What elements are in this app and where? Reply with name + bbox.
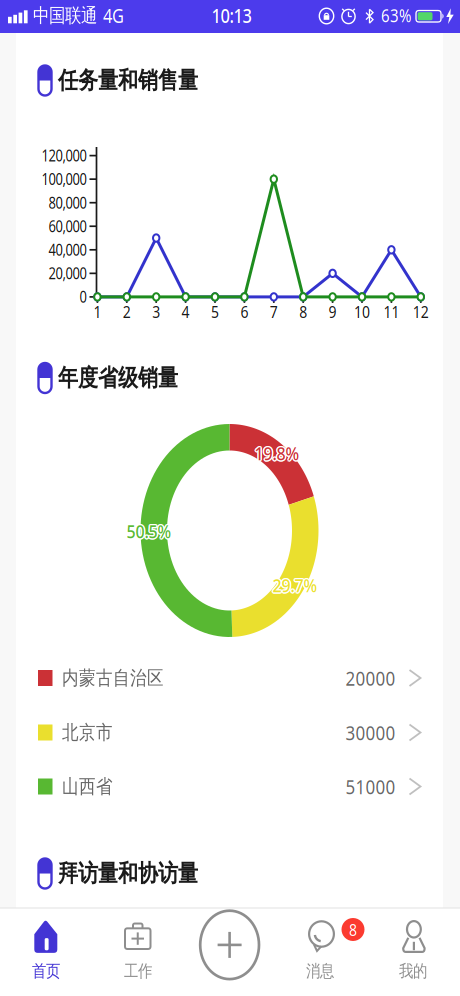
staticText: 0 <box>79 288 86 306</box>
staticText: 7 <box>270 302 278 321</box>
staticText: 51000 <box>345 775 395 798</box>
staticText: 12 <box>413 302 429 321</box>
staticText: 4G <box>103 4 124 27</box>
staticText: 8 <box>299 302 307 321</box>
staticText: 100,000 <box>41 170 86 188</box>
staticText: 19.8% <box>255 441 300 463</box>
staticText: 20,000 <box>48 264 86 282</box>
staticText: 120,000 <box>41 147 86 164</box>
staticText: 30000 <box>345 721 395 744</box>
staticText: 19.8% <box>253 441 298 463</box>
staticText: 首页 <box>32 962 60 980</box>
staticText: 我的 <box>399 962 427 980</box>
staticText: 5 <box>211 302 219 321</box>
staticText: 19.8% <box>254 441 299 462</box>
staticText: 50.5% <box>126 519 171 540</box>
staticText: 19.8% <box>254 442 299 464</box>
staticText: 2 <box>123 302 131 321</box>
staticText: 任务量和销售量 <box>58 68 198 93</box>
staticText: 拜访量和协访量 <box>58 861 198 886</box>
staticText: 3 <box>152 302 160 321</box>
staticText: 40,000 <box>48 241 86 259</box>
staticText: 50.5% <box>125 519 170 541</box>
staticText: 29.7% <box>272 574 317 596</box>
staticText: 29.7% <box>271 573 316 595</box>
staticText: 29.7% <box>274 574 319 596</box>
staticText: 63% <box>381 5 411 26</box>
staticText: 1 <box>93 302 101 321</box>
staticText: 19.8% <box>255 443 300 465</box>
staticText: 29.7% <box>271 575 316 597</box>
staticText: 山西省 <box>62 776 113 797</box>
staticText: 60,000 <box>48 217 86 235</box>
staticText: 11 <box>383 302 399 321</box>
staticText: 50.5% <box>127 521 172 543</box>
staticText: 10 <box>354 302 370 321</box>
staticText: 19.8% <box>254 443 299 465</box>
staticText: 50.5% <box>125 521 170 543</box>
staticText: 50.5% <box>126 521 171 543</box>
staticText: 50.5% <box>127 519 172 541</box>
staticText: 29.7% <box>273 573 318 595</box>
staticText: 年度省级销量 <box>58 365 178 391</box>
staticText: 中国联通 <box>33 5 97 26</box>
staticText: 19.8% <box>253 443 298 465</box>
staticText: 10:13 <box>211 4 251 27</box>
staticText: 50.5% <box>125 520 170 542</box>
staticText: 19.8% <box>253 442 298 464</box>
staticText: 4 <box>182 302 190 321</box>
staticText: 50.5% <box>126 520 171 542</box>
staticText: 6 <box>240 302 248 321</box>
staticText: 工作 <box>124 962 152 980</box>
staticText: 20000 <box>345 666 395 690</box>
staticText: 29.7% <box>271 574 316 596</box>
staticText: 29.7% <box>272 573 317 594</box>
staticText: 19.8% <box>256 442 301 464</box>
staticText: 80,000 <box>48 194 86 211</box>
staticText: 8 <box>349 920 357 939</box>
staticText: 消息 <box>306 962 334 980</box>
staticText: 内蒙古自治区 <box>62 668 164 688</box>
staticText: 50.5% <box>128 520 173 542</box>
staticText: 北京市 <box>62 722 113 743</box>
staticText: 29.7% <box>272 575 317 597</box>
staticText: 9 <box>329 302 337 321</box>
staticText: 29.7% <box>273 575 318 597</box>
